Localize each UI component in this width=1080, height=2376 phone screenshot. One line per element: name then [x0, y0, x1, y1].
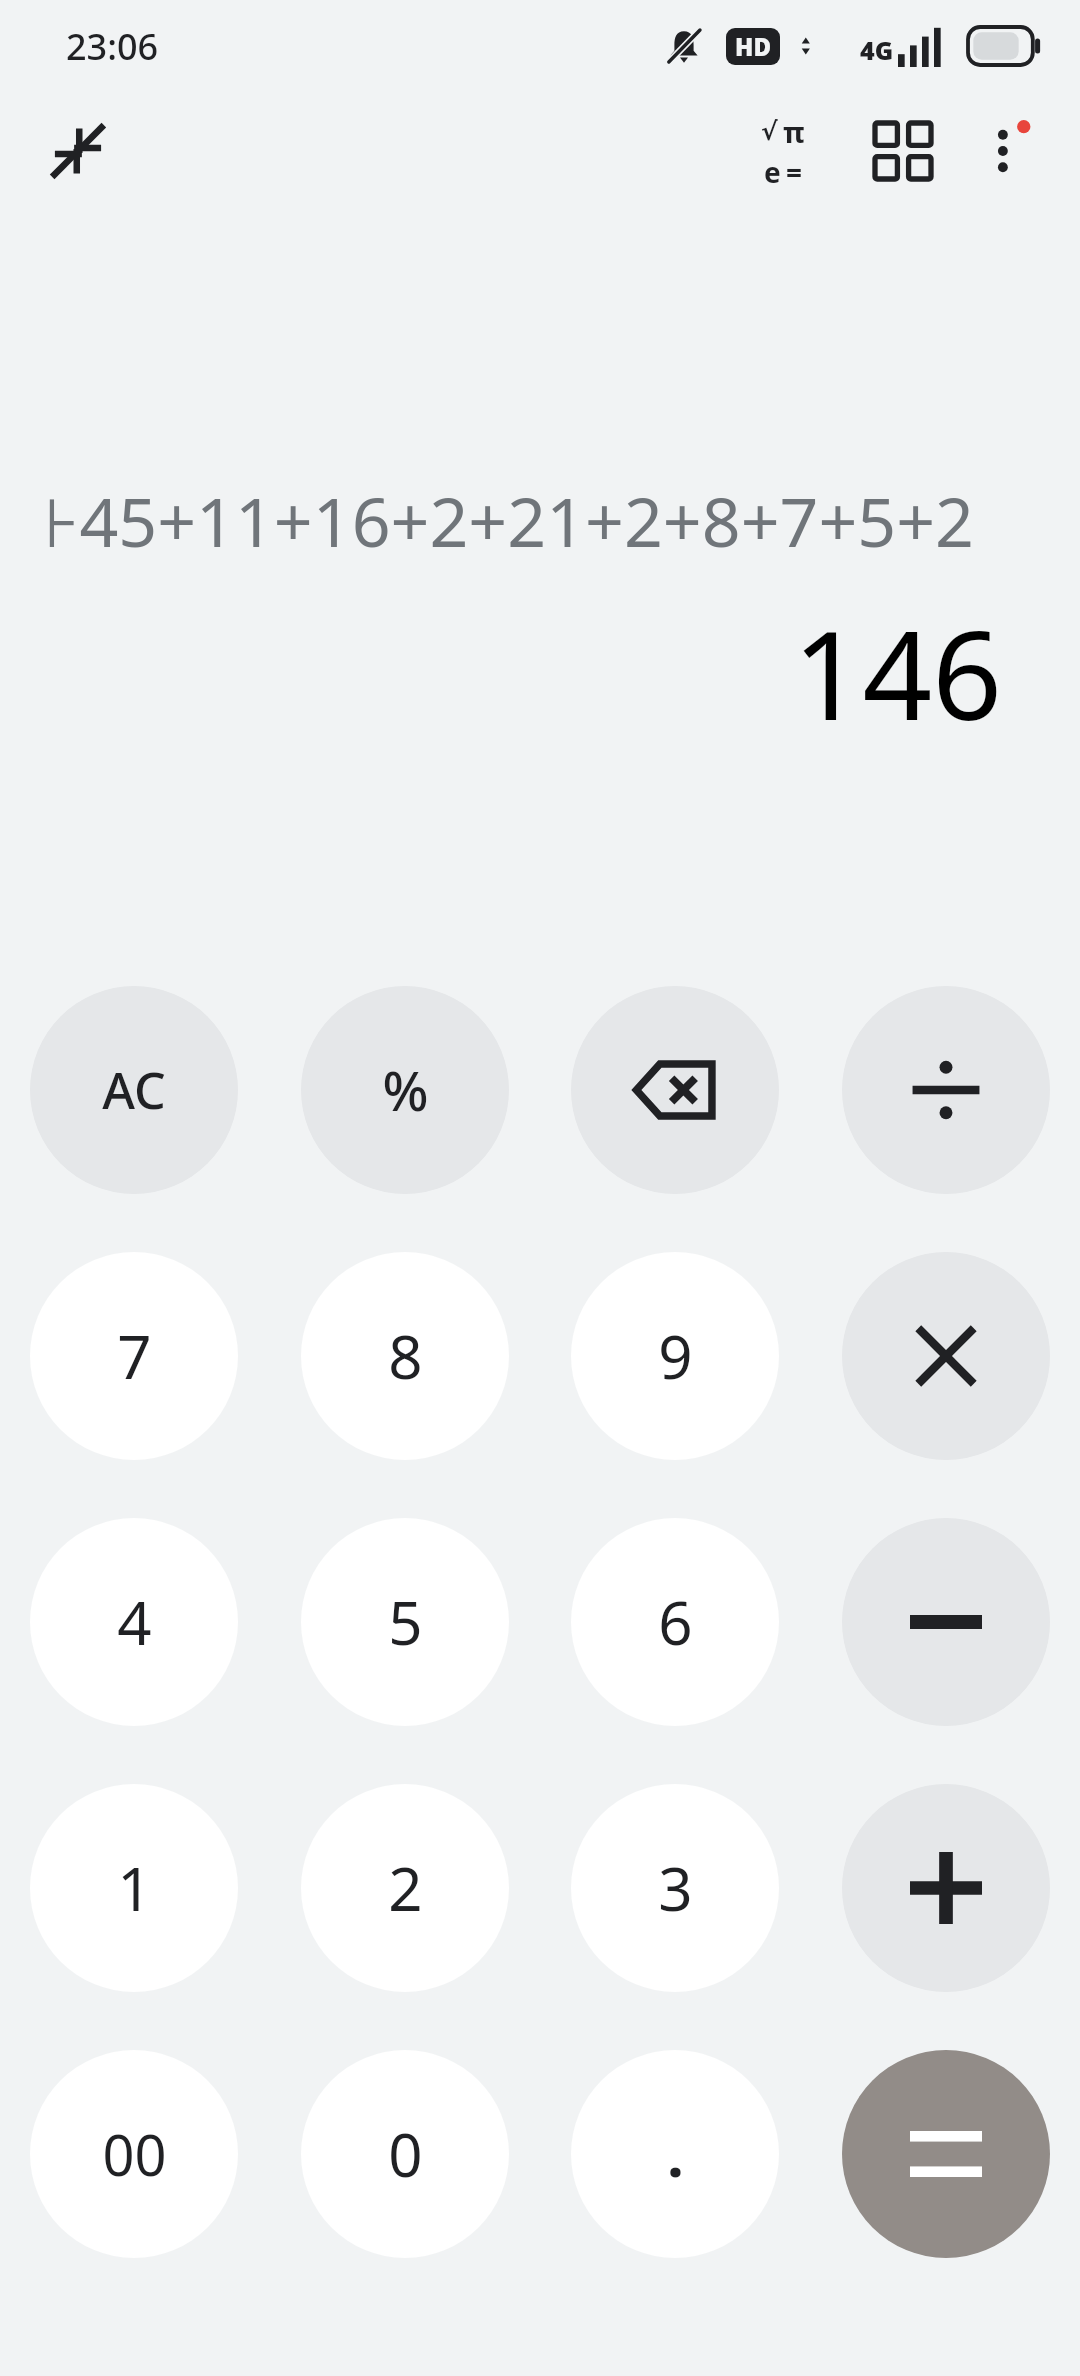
staticText: 00	[102, 2116, 167, 2192]
button[interactable]: Percent	[301, 986, 509, 1194]
staticText: 4	[117, 1581, 152, 1663]
staticText: 1	[117, 1847, 152, 1929]
button[interactable]: Double zero	[30, 2050, 238, 2258]
button[interactable]: Scientific mode	[740, 108, 826, 194]
staticText: 8	[388, 1315, 423, 1397]
button[interactable]: 6	[571, 1518, 779, 1726]
staticText: π	[783, 112, 805, 151]
staticText: %	[382, 1053, 429, 1127]
button[interactable]: 7	[30, 1252, 238, 1460]
staticText: =	[786, 153, 803, 191]
staticText: 2	[388, 1847, 423, 1929]
button[interactable]: Plus	[842, 1784, 1050, 1992]
staticText: 146	[792, 590, 1002, 740]
staticText: √	[761, 117, 778, 146]
button[interactable]: Multiply	[842, 1252, 1050, 1460]
button[interactable]: Divide	[842, 986, 1050, 1194]
button[interactable]: Converters	[860, 108, 946, 194]
staticText: 9	[658, 1315, 693, 1397]
button[interactable]: Backspace	[571, 986, 779, 1194]
button[interactable]: 8	[301, 1252, 509, 1460]
staticText: 3	[658, 1847, 693, 1929]
button[interactable]: Decimal point	[571, 2050, 779, 2258]
button[interactable]: Collapse	[38, 111, 118, 191]
staticText: .	[667, 2113, 684, 2195]
button[interactable]: Equals	[842, 2050, 1050, 2258]
staticText: 4G	[860, 33, 894, 67]
button[interactable]: 0	[301, 2050, 509, 2258]
staticText: 5	[388, 1581, 423, 1663]
staticText: e	[764, 153, 781, 191]
staticText: HD	[735, 30, 771, 63]
button[interactable]: 2	[301, 1784, 509, 1992]
button[interactable]: 4	[30, 1518, 238, 1726]
button[interactable]: AC	[30, 986, 238, 1194]
button[interactable]: 5	[301, 1518, 509, 1726]
button[interactable]: 3	[571, 1784, 779, 1992]
staticText: 6	[658, 1581, 693, 1663]
button[interactable]: More options	[968, 108, 1054, 194]
button[interactable]: 9	[571, 1252, 779, 1460]
button[interactable]: 1	[30, 1784, 238, 1992]
staticText: AC	[102, 1056, 166, 1124]
staticText: 0	[388, 2113, 423, 2195]
staticText: 23:06	[66, 22, 159, 71]
staticText: ⊦45+11+16+2+21+2+8+7+5+2	[44, 474, 975, 567]
staticText: 7	[117, 1315, 152, 1397]
button[interactable]: Minus	[842, 1518, 1050, 1726]
